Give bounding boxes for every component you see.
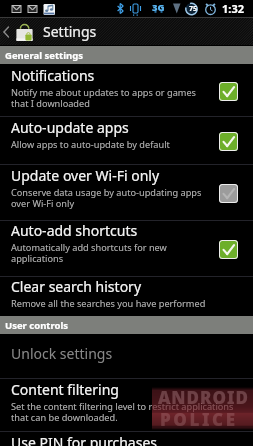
staticText: 3G xyxy=(152,1,165,14)
staticText: Auto-add shortcuts xyxy=(11,221,138,240)
staticText: Unlock settings xyxy=(11,344,113,363)
staticText: 1:32 xyxy=(222,1,244,16)
staticText: General settings xyxy=(5,49,83,62)
button[interactable]: Auto-update apps xyxy=(0,117,253,164)
staticText: User controls xyxy=(5,319,69,332)
button[interactable]: Notifications xyxy=(0,64,253,116)
button[interactable]: Checked xyxy=(219,82,238,101)
button[interactable]: Clear search history xyxy=(0,277,253,316)
staticText: Automatically add shortcuts for new appl… xyxy=(11,241,167,265)
button[interactable]: Use PIN for purchases xyxy=(0,432,253,446)
staticText: Remove all the searches you have perform… xyxy=(11,297,206,310)
button[interactable]: Checked xyxy=(219,132,238,151)
staticText: Use PIN for purchases xyxy=(11,433,157,446)
button[interactable]: Unlock settings xyxy=(0,334,253,378)
staticText: Clear search history xyxy=(11,277,142,296)
button[interactable]: Up to Market home xyxy=(0,17,253,46)
button[interactable]: Auto-add shortcuts xyxy=(0,221,253,276)
staticText: Content filtering xyxy=(11,380,119,399)
staticText: Notify me about updates to apps or games… xyxy=(11,86,197,110)
staticText: Conserve data usage by auto-updating app… xyxy=(11,186,202,210)
staticText: Allow apps to auto-update by default xyxy=(11,138,170,151)
button[interactable]: Unchecked xyxy=(219,184,238,203)
staticText: POLICE xyxy=(160,408,238,431)
staticText: Set the content filtering level to restr… xyxy=(11,400,234,424)
staticText: 75 xyxy=(189,4,198,14)
staticText: Notifications xyxy=(11,66,95,85)
button[interactable]: Update over Wi-Fi only xyxy=(0,165,253,220)
staticText: ANDROID xyxy=(158,386,250,409)
button[interactable]: Checked xyxy=(219,240,238,259)
staticText: Update over Wi-Fi only xyxy=(11,166,160,185)
staticText: Auto-update apps xyxy=(11,118,129,137)
staticText: Settings xyxy=(43,22,97,41)
button[interactable]: Content filtering xyxy=(0,379,253,431)
